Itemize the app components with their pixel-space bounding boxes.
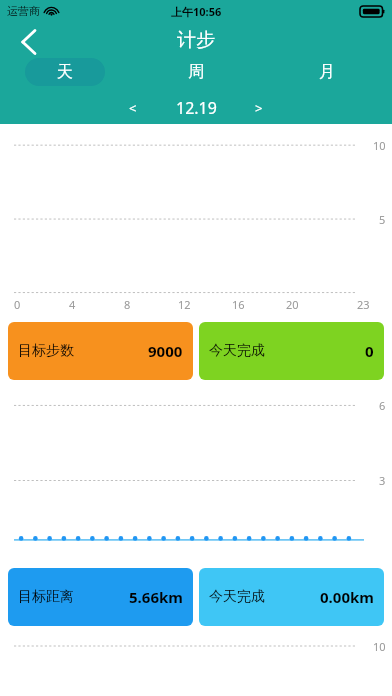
staticText: 9000 [148,341,183,361]
staticText: 目标距离 [18,588,74,606]
staticText: 8 [124,297,131,312]
staticText: 月 [319,62,335,82]
button[interactable]: 天 [25,58,105,86]
staticText: 10 [373,138,386,153]
staticText: 目标步数 [18,342,74,360]
staticText: 0.00km [320,587,374,607]
staticText: 运营商 [7,4,40,18]
button[interactable]: Next day [241,96,277,120]
staticText: 今天完成 [209,342,265,360]
staticText: 5.66km [129,587,183,607]
button[interactable]: 目标步数 [8,322,193,380]
staticText: 20 [286,297,299,312]
staticText: < [129,99,137,117]
button[interactable]: 目标距离 [8,568,193,626]
staticText: 12.19 [176,97,217,119]
staticText: 10 [373,639,386,654]
staticText: 今天完成 [209,588,265,606]
staticText: 23 [357,297,370,312]
staticText: 3 [379,473,386,488]
button[interactable]: Previous day [115,96,151,120]
staticText: 4 [69,297,76,312]
staticText: 0 [14,297,21,312]
staticText: 6 [379,398,386,413]
staticText: 计步 [177,28,215,52]
staticText: 16 [232,297,245,312]
button[interactable]: Back [8,22,48,62]
staticText: 上午10:56 [171,4,222,19]
staticText: 12 [178,297,191,312]
button[interactable]: 周 [156,58,236,86]
staticText: 周 [188,62,204,82]
button[interactable]: 月 [287,58,367,86]
button[interactable]: 今天完成 [199,568,384,626]
staticText: > [255,99,263,117]
staticText: 5 [379,212,386,227]
button[interactable]: 今天完成 [199,322,384,380]
staticText: 天 [57,62,73,82]
staticText: 0 [365,341,374,361]
